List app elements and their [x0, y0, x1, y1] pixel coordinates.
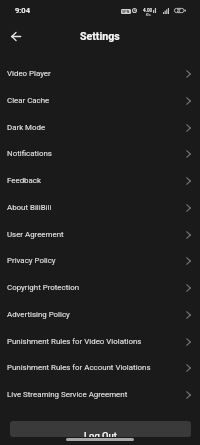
button[interactable]: Live Streaming Service Agreement	[0, 381, 200, 408]
button[interactable]: Privacy Policy	[0, 247, 200, 274]
button[interactable]: Log Out	[10, 421, 191, 437]
staticText: Video Player	[7, 69, 51, 78]
button[interactable]: Video Player	[0, 60, 200, 87]
button[interactable]: Feedback	[0, 167, 200, 194]
staticText: 9:04	[15, 6, 30, 15]
button[interactable]: Back	[3, 22, 28, 50]
staticText: Punishment Rules for Account Violations	[7, 363, 151, 372]
button[interactable]: Clear Cache	[0, 87, 200, 114]
staticText: Privacy Policy	[7, 256, 56, 265]
staticText: Clear Cache	[7, 96, 50, 105]
staticText: Advertising Policy	[7, 310, 70, 319]
button[interactable]: Dark Mode	[0, 114, 200, 141]
staticText: Settings	[80, 30, 120, 42]
button[interactable]: Advertising Policy	[0, 301, 200, 328]
staticText: Punishment Rules for Video Violations	[7, 337, 142, 346]
staticText: Log Out	[84, 430, 117, 437]
button[interactable]: Notifications	[0, 140, 200, 167]
button[interactable]: Punishment Rules for Video Violations	[0, 328, 200, 355]
staticText: K/s	[146, 13, 151, 17]
staticText: Copyright Protection	[7, 283, 79, 292]
staticText: Notifications	[7, 149, 52, 158]
staticText: VPN	[122, 10, 130, 14]
button[interactable]: About BiliBili	[0, 194, 200, 221]
staticText: Live Streaming Service Agreement	[7, 390, 128, 399]
staticText: Dark Mode	[7, 123, 46, 132]
staticText: User Agreement	[7, 230, 64, 239]
button[interactable]: Copyright Protection	[0, 274, 200, 301]
staticText: 27	[177, 9, 181, 13]
button[interactable]: User Agreement	[0, 221, 200, 248]
staticText: 4.00	[143, 8, 153, 13]
button[interactable]: Punishment Rules for Account Violations	[0, 354, 200, 381]
staticText: Feedback	[7, 176, 41, 185]
staticText: About BiliBili	[7, 203, 52, 212]
